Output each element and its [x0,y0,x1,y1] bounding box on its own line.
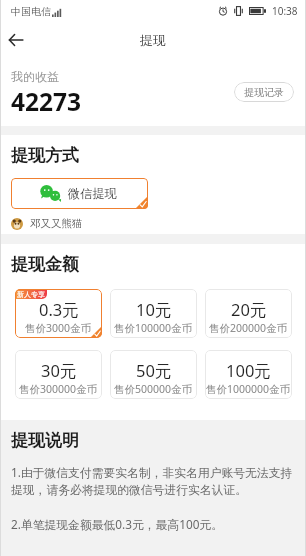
staticText: 提现记录 [244,86,284,99]
button[interactable]: 提现记录 [234,82,294,102]
staticText: 42273 [11,85,82,118]
button[interactable]: Back [0,24,32,56]
button[interactable]: 50元 [110,350,197,399]
button[interactable]: 10元 [110,289,197,338]
staticText: 100元 [226,359,271,382]
staticText: 50元 [136,359,172,382]
staticText: 售价300000金币 [19,382,98,396]
staticText: 售价3000金币 [25,321,92,335]
button[interactable]: 微信提现 [11,178,148,209]
staticText: 中国电信 [11,5,51,18]
staticText: 10元 [136,298,172,321]
staticText: 30元 [41,359,77,382]
button[interactable]: 30元 [15,350,102,399]
staticText: 邓又又熊猫 [30,217,83,230]
staticText: 新人专享 [17,290,45,299]
staticText: 售价500000金币 [114,382,193,396]
staticText: 提现金额 [11,254,79,275]
button[interactable]: 20元 [205,289,292,338]
button[interactable]: 100元 [205,350,292,399]
staticText: 提现方式 [11,145,79,166]
button[interactable]: 0.3元 [15,289,102,338]
staticText: 1.由于微信支付需要实名制，非实名用户账号无法支持提现，请务必将提现的微信号进行… [11,464,299,498]
staticText: 提现说明 [11,430,79,451]
staticText: 10:38 [272,4,298,18]
staticText: 我的收益 [11,69,59,84]
staticText: 售价1000000金币 [206,382,291,396]
staticText: 售价200000金币 [209,321,288,335]
staticText: 微信提现 [68,186,117,201]
staticText: 20元 [231,298,267,321]
staticText: 0.3元 [39,298,79,321]
staticText: 提现 [140,32,166,48]
staticText: 2.单笔提现金额最低0.3元，最高100元。 [11,516,223,532]
staticText: 售价100000金币 [114,321,193,335]
